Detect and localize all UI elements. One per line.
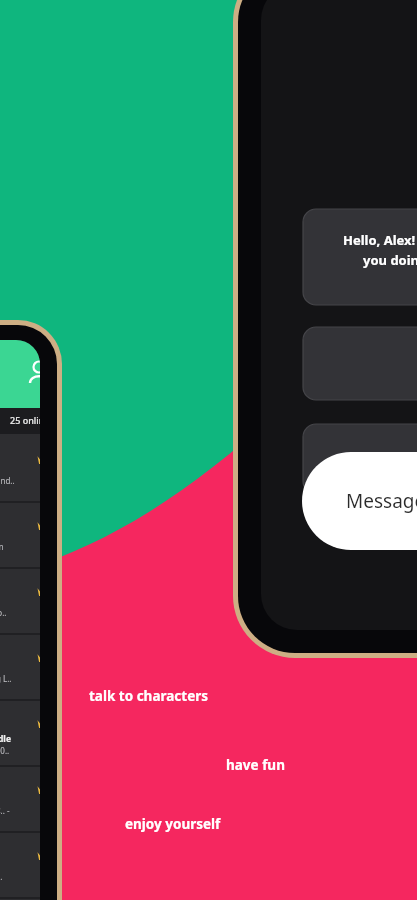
button[interactable]: Character list item — [0, 503, 62, 569]
button[interactable]: Character list item — [0, 437, 62, 503]
button[interactable]: 25 online — [0, 408, 62, 434]
button[interactable]: Character greeting message — [303, 209, 417, 305]
button[interactable]: Message — [302, 452, 417, 550]
